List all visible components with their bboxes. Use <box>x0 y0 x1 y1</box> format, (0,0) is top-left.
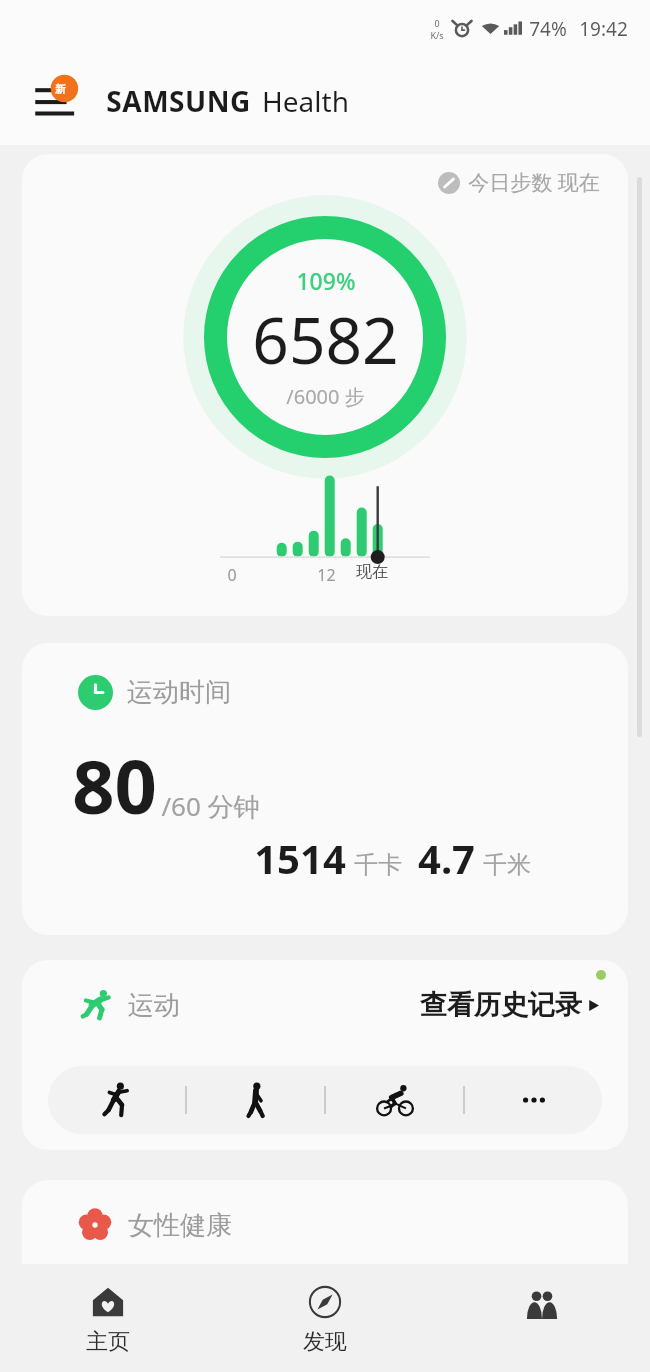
staticText: 109% <box>296 265 356 296</box>
staticText: /60 分钟 <box>161 788 260 824</box>
staticText: 千卡 <box>354 850 402 880</box>
button[interactable]: More <box>465 1066 602 1134</box>
staticText: K/s <box>430 29 444 41</box>
staticText: 0 <box>434 17 440 29</box>
button[interactable]: 运动时间 <box>22 643 628 935</box>
button[interactable]: Menu <box>32 74 86 128</box>
button[interactable]: 发现 <box>216 1264 433 1372</box>
button[interactable]: 查看历史记录 <box>420 988 602 1022</box>
staticText: SAMSUNG <box>106 82 251 120</box>
staticText: 千米 <box>483 850 531 880</box>
staticText: 80 <box>72 735 157 836</box>
staticText: 74% <box>529 16 567 42</box>
staticText: 主页 <box>86 1328 130 1356</box>
staticText: 12 <box>317 564 336 586</box>
button[interactable]: 主页 <box>0 1264 216 1372</box>
staticText: 运动时间 <box>127 676 231 709</box>
staticText: 6582 <box>252 296 399 383</box>
staticText: 现在 <box>356 562 388 582</box>
staticText: 女性健康 <box>128 1209 232 1242</box>
staticText: 发现 <box>303 1328 347 1356</box>
staticText: 0 <box>227 564 237 586</box>
button[interactable]: 运动 <box>22 960 628 1150</box>
button[interactable]: Running <box>48 1066 185 1134</box>
button[interactable]: 女性健康 <box>22 1180 628 1264</box>
staticText: /6000 步 <box>286 383 365 410</box>
staticText: 查看历史记录 <box>420 988 582 1022</box>
staticText: 19:42 <box>579 16 628 42</box>
staticText: 运动 <box>128 989 180 1022</box>
button[interactable]: 今日步数 现在 <box>22 154 628 616</box>
staticText: 新 <box>55 82 66 96</box>
staticText: 今日步数 现在 <box>468 168 600 197</box>
staticText: 1514 <box>254 831 346 885</box>
staticText: 4.7 <box>418 831 475 885</box>
staticText: Health <box>262 82 349 120</box>
button[interactable]: Together <box>433 1264 650 1372</box>
button[interactable]: Cycling <box>326 1066 463 1134</box>
button[interactable]: Walking <box>187 1066 324 1134</box>
